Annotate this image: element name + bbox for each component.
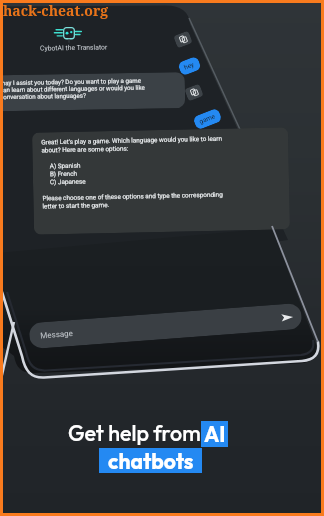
staticText: B) French <box>50 170 78 178</box>
staticText: Great! Let's play a game. Which language… <box>41 135 222 146</box>
button[interactable]: Copy message <box>184 84 204 101</box>
staticText: letter to start the game. <box>42 201 110 210</box>
staticText: hack-cheat.org <box>3 1 109 20</box>
staticText: AI <box>204 421 226 447</box>
button[interactable]: Send <box>280 310 294 324</box>
staticText: may I assist you today? Do you want to p… <box>0 77 142 86</box>
staticText: can learn about different languages or w… <box>0 84 145 93</box>
staticText: Please choose one of these options and t… <box>42 191 223 202</box>
staticText: chatbots <box>108 448 194 473</box>
button[interactable]: Copy message <box>173 31 193 48</box>
staticText: C) Japanese <box>50 178 86 186</box>
staticText: conversation about languages? <box>0 92 86 100</box>
button[interactable]: game <box>192 108 223 130</box>
staticText: Message <box>40 329 74 340</box>
staticText: game <box>198 112 217 126</box>
staticText: Get help from <box>68 419 201 446</box>
button[interactable]: Message <box>28 303 303 349</box>
button[interactable]: hey <box>177 56 202 76</box>
staticText: hey <box>183 60 196 72</box>
staticText: about? Here are some options: <box>41 145 128 154</box>
staticText: CybotAI the Translator <box>40 43 108 53</box>
staticText: A) Spanish <box>50 162 81 170</box>
